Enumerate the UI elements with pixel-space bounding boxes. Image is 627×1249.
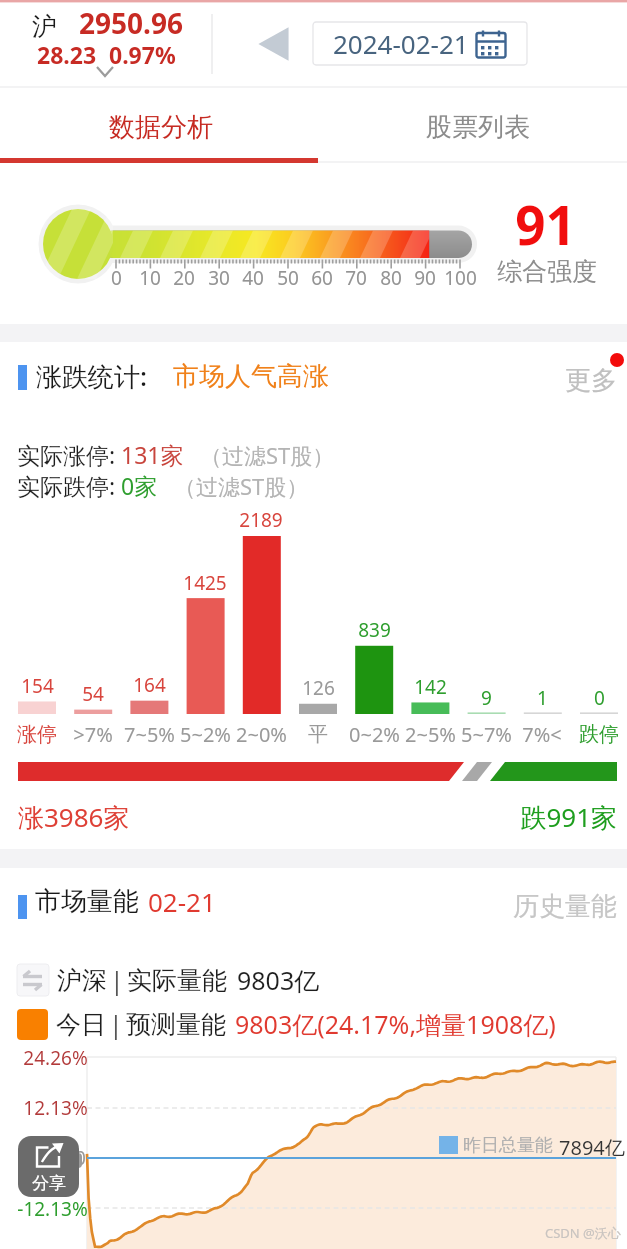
staticText: 7894亿 (559, 1134, 625, 1156)
staticText: 平 (308, 722, 328, 747)
button[interactable]: 数据分析 (0, 88, 313, 163)
staticText: 164 (133, 672, 166, 698)
staticText: >7% (73, 721, 113, 748)
staticText: 实际量能 (127, 965, 227, 996)
staticText: 90 (414, 265, 436, 291)
staticText: 2~0% (236, 721, 287, 748)
staticText: 30 (208, 265, 230, 291)
staticText: 实际涨停: (17, 439, 116, 470)
staticText: -12.13% (17, 1196, 88, 1222)
staticText: 0 (111, 265, 122, 291)
button[interactable]: 股票列表 (313, 88, 627, 163)
staticText: 20 (173, 265, 195, 291)
staticText: 9803亿(24.17%,增量1908亿) (235, 1007, 556, 1041)
staticText: 涨跌统计: (36, 358, 148, 394)
staticText: 40 (242, 265, 264, 291)
staticText: 沪 (32, 11, 57, 42)
staticText: 24.26% (23, 1045, 88, 1071)
staticText: 跌停 (579, 722, 619, 747)
staticText: | (109, 1007, 123, 1041)
staticText: 9803亿 (237, 963, 320, 997)
staticText: 50 (277, 265, 299, 291)
staticText: （过滤ST股） (174, 471, 309, 501)
staticText: 综合强度 (497, 256, 597, 287)
staticText: 54 (82, 681, 104, 707)
staticText: 股票列表 (426, 111, 530, 144)
staticText: 91 (515, 188, 576, 260)
staticText: 126 (302, 675, 335, 701)
staticText: 154 (21, 673, 54, 699)
staticText: 7%< (522, 721, 562, 748)
staticText: 更多 (565, 364, 617, 397)
staticText: 0 (75, 1145, 86, 1171)
staticText: 2950.96 (79, 4, 183, 42)
staticText: 涨3986家 (18, 799, 130, 835)
button[interactable]: 历史量能 (500, 884, 627, 928)
staticText: 市场人气高涨 (173, 360, 329, 393)
staticText: 2~5% (405, 721, 456, 748)
staticText: 历史量能 (513, 890, 617, 923)
staticText: | (110, 963, 124, 997)
staticText: 0.97% (109, 39, 176, 70)
staticText: 今日 (56, 1009, 106, 1040)
staticText: 60 (311, 265, 333, 291)
staticText: 昨日总量能 (463, 1134, 553, 1156)
staticText: 131家 (121, 439, 184, 470)
staticText: 2189 (239, 507, 283, 533)
staticText: 80 (380, 265, 402, 291)
button[interactable]: 分享 Share (18, 1136, 79, 1197)
staticText: 70 (345, 265, 367, 291)
button[interactable]: 2024-02-21 (313, 22, 527, 65)
button[interactable]: Previous day (248, 22, 300, 66)
staticText: 跌991家 (391, 799, 617, 835)
staticText: （过滤ST股） (200, 440, 335, 470)
staticText: 5~2% (180, 721, 231, 748)
staticText: 0 (594, 685, 605, 711)
staticText: 9 (481, 685, 492, 711)
staticText: 839 (358, 617, 391, 643)
staticText: CSDN @沃心 (545, 1224, 621, 1242)
staticText: 分享 (32, 1173, 66, 1194)
button[interactable]: 更多 (548, 358, 627, 402)
staticText: 1 (537, 685, 548, 711)
staticText: 7~5% (124, 721, 175, 748)
staticText: 数据分析 (109, 111, 213, 144)
staticText: 预测量能 (126, 1009, 226, 1040)
staticText: 1425 (183, 570, 227, 596)
staticText: 涨停 (17, 722, 57, 747)
staticText: 5~7% (461, 721, 512, 748)
staticText: 02-21 (148, 884, 216, 919)
staticText: 实际跌停: (17, 470, 116, 501)
staticText: 2024-02-21 (333, 26, 469, 61)
staticText: 0~2% (349, 721, 400, 748)
staticText: 10 (139, 265, 161, 291)
staticText: 市场量能 (35, 885, 139, 918)
staticText: 142 (414, 674, 447, 700)
staticText: 12.13% (23, 1095, 88, 1121)
staticText: 沪深 (57, 965, 107, 996)
staticText: 0家 (121, 470, 158, 501)
staticText: 100 (444, 265, 477, 291)
button[interactable]: 沪 (0, 0, 212, 88)
staticText: 28.23 (37, 39, 97, 70)
